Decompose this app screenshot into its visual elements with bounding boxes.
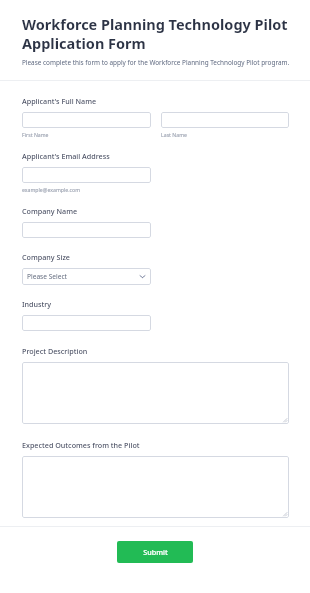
staticText: Submit <box>143 547 168 557</box>
button[interactable] <box>22 315 151 331</box>
staticText: Please Select <box>27 272 68 281</box>
staticText: Applicant's Email Address <box>22 151 110 161</box>
staticText: First Name <box>22 131 49 138</box>
button[interactable] <box>22 222 151 238</box>
staticText: Last Name <box>161 131 187 138</box>
staticText: Project Description <box>22 346 88 356</box>
staticText: Company Name <box>22 206 78 216</box>
button[interactable]: Please Select <box>22 268 151 285</box>
button[interactable]: Submit <box>117 541 193 563</box>
staticText: Applicant's Full Name <box>22 96 97 106</box>
staticText: example@example.com <box>22 186 81 193</box>
staticText: Expected Outcomes from the Pilot <box>22 440 140 450</box>
button[interactable] <box>22 456 289 518</box>
staticText: Workforce Planning Technology Pilot Appl… <box>22 14 290 53</box>
button[interactable] <box>22 112 151 128</box>
staticText: Industry <box>22 299 52 309</box>
button[interactable] <box>22 362 289 424</box>
staticText: Company Size <box>22 252 70 262</box>
button[interactable] <box>22 167 151 183</box>
button[interactable] <box>161 112 289 128</box>
staticText: Please complete this form to apply for t… <box>22 58 290 67</box>
